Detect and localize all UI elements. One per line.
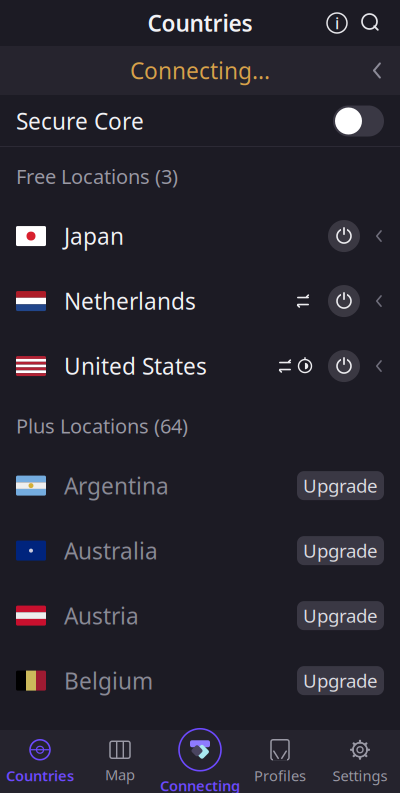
staticText: Brazil [64, 731, 124, 761]
button[interactable]: Argentina [0, 453, 400, 518]
staticText: Australia [64, 536, 158, 566]
staticText: Netherlands [64, 286, 196, 316]
staticText: Upgrade [303, 538, 378, 563]
staticText: Upgrade [303, 473, 378, 498]
button[interactable]: Connect [328, 350, 360, 382]
staticText: Countries [147, 8, 252, 38]
staticText: Countries [6, 766, 74, 785]
button[interactable]: Information [320, 6, 354, 40]
staticText: Secure Core [16, 106, 144, 136]
staticText: Connecting [160, 776, 240, 793]
staticText: i [335, 12, 339, 34]
button[interactable]: Netherlands [0, 269, 400, 334]
button[interactable]: Secure Core [333, 105, 384, 136]
staticText: Plus Locations (64) [16, 413, 188, 439]
button[interactable]: Australia [0, 518, 400, 583]
staticText: Japan [64, 221, 124, 251]
staticText: Profiles [254, 766, 306, 785]
button[interactable]: Map [80, 732, 160, 790]
staticText: Upgrade [303, 733, 378, 758]
button[interactable]: Japan [0, 204, 400, 269]
button[interactable]: Search [354, 6, 388, 40]
button[interactable]: Brazil [0, 713, 400, 778]
staticText: Belgium [64, 666, 153, 696]
staticText: Map [105, 765, 135, 784]
button[interactable]: Canada [0, 778, 400, 793]
button[interactable]: Connect [328, 285, 360, 317]
button[interactable]: Countries [0, 732, 80, 790]
staticText: United States [64, 351, 207, 381]
staticText: Upgrade [303, 603, 378, 628]
staticText: Upgrade [303, 668, 378, 693]
staticText: Free Locations (3) [16, 163, 178, 190]
button[interactable]: United States [0, 334, 400, 399]
staticText: Connecting... [130, 55, 270, 85]
button[interactable]: Connecting... [0, 46, 400, 95]
button[interactable]: Profiles [240, 732, 320, 790]
button[interactable]: Austria [0, 583, 400, 648]
button[interactable]: Connect [328, 220, 360, 252]
staticText: Settings [332, 766, 387, 785]
staticText: Argentina [64, 471, 169, 501]
button[interactable]: Settings [320, 732, 400, 790]
button[interactable]: Belgium [0, 648, 400, 713]
staticText: Austria [64, 601, 139, 631]
button[interactable]: Connecting [160, 732, 240, 790]
